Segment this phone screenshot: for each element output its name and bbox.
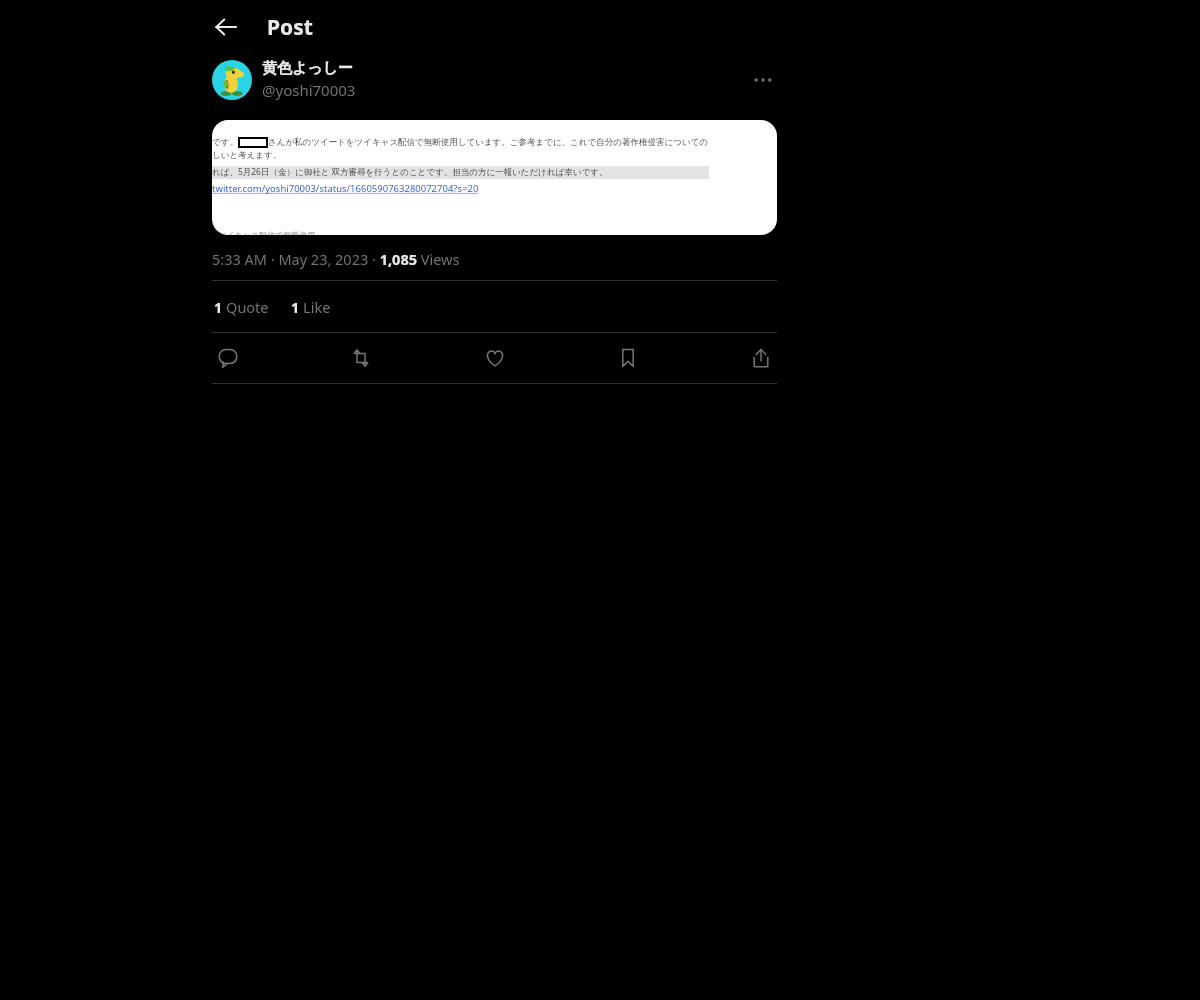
staticText: 5:33 AM · May 23, 2023 · 1,085 Views — [212, 249, 460, 269]
button[interactable]: Profile picture — [212, 60, 252, 100]
button[interactable]: Bookmark — [608, 338, 648, 378]
button[interactable]: 1 Like — [289, 289, 333, 325]
staticText: 1 Quote — [214, 297, 269, 317]
button[interactable]: Share — [741, 338, 781, 378]
staticText: ツイキャス配信で無断使用 — [218, 230, 316, 235]
button[interactable]: Reply — [208, 338, 248, 378]
staticText: 黄色よっしー — [262, 59, 354, 78]
staticText: さんが私のツイートをツイキャス配信で無断使用しています。ご参考までに。これで自分… — [268, 137, 708, 148]
staticText: 1 Like — [291, 297, 331, 317]
button[interactable]: More options — [743, 60, 783, 100]
button[interactable]: Repost — [341, 338, 381, 378]
staticText: しいと考えます。 — [212, 150, 282, 161]
button[interactable]: 1 Quote — [212, 289, 271, 325]
button[interactable]: Back — [205, 6, 247, 48]
staticText: twitter.com/yoshi70003/status/1660590763… — [212, 182, 479, 195]
button[interactable]: Image attachment — [212, 120, 777, 235]
staticText: Post — [267, 13, 313, 42]
staticText: です。 — [212, 137, 238, 148]
button[interactable]: Like — [475, 338, 515, 378]
staticText: れば、5月26日（金）に御社と 双方審尋を行うとのことです。担当の方に一報いただ… — [212, 166, 608, 178]
staticText: @yoshi70003 — [262, 80, 356, 100]
